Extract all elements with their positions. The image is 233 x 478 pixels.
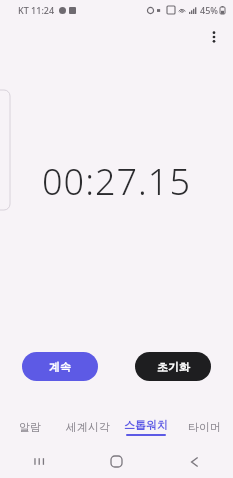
button[interactable]: More options [199, 22, 229, 52]
button[interactable]: Home [77, 445, 155, 478]
button[interactable]: Back [155, 445, 233, 478]
staticText: 알람 [19, 420, 41, 434]
staticText: 45% [200, 4, 218, 16]
staticText: 스톱워치 [124, 418, 168, 432]
button[interactable]: Recent apps [0, 445, 77, 478]
staticText: 타이머 [188, 420, 221, 434]
button[interactable]: 계속 [22, 352, 98, 381]
staticText: 초기화 [157, 360, 190, 374]
staticText: KT 11:24 [18, 4, 55, 16]
staticText: 계속 [49, 360, 71, 374]
staticText: 00:27.15 [42, 157, 191, 206]
button[interactable]: 타이머 [175, 409, 233, 445]
staticText: 세계시각 [66, 420, 110, 434]
button[interactable]: 스톱워치 [117, 409, 175, 445]
button[interactable]: 초기화 [135, 352, 211, 381]
button[interactable]: 세계시각 [59, 409, 117, 445]
button[interactable]: 알람 [0, 409, 59, 445]
